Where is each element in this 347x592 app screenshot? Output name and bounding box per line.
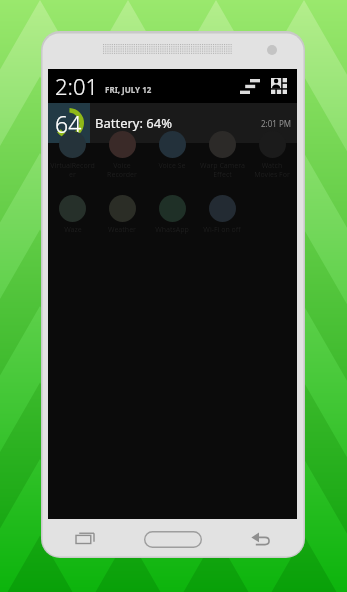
button[interactable]: WhatsApp [147,195,197,243]
staticText: Waze [64,225,82,235]
button[interactable]: Home [129,521,217,557]
staticText: 64 [55,108,82,138]
staticText: VirtualRecord er [50,161,95,179]
button[interactable]: VirtualRecord er [48,131,97,179]
button[interactable]: Waze [48,195,97,243]
staticText: Voice Recorder [107,161,137,179]
staticText: Battery: 64% [95,114,172,132]
button[interactable]: 64 [48,103,297,143]
staticText: FRI, JULY 12 [105,84,152,95]
button[interactable]: Voice Recorder [97,131,147,179]
button[interactable]: Warp Camera Effect [197,131,247,179]
button[interactable]: Data usage [240,76,260,96]
staticText: Wi-Fi on off [203,225,241,235]
staticText: Weather [108,225,136,235]
button[interactable]: Weather [97,195,147,243]
button[interactable]: Wi-Fi on off [197,195,247,243]
button[interactable]: Voice Se [147,131,197,179]
staticText: WhatsApp [155,225,189,235]
staticText: Warp Camera Effect [200,161,245,179]
staticText: 2:01 PM [261,118,292,129]
button[interactable]: Recents [41,521,129,557]
button[interactable]: Quick settings [269,76,289,96]
staticText: 2:01 [55,71,99,101]
button[interactable]: Watch Movies For [247,131,297,179]
staticText: Watch Movies For [254,161,290,179]
staticText: Voice Se [158,161,186,171]
button[interactable]: Back [217,521,305,557]
